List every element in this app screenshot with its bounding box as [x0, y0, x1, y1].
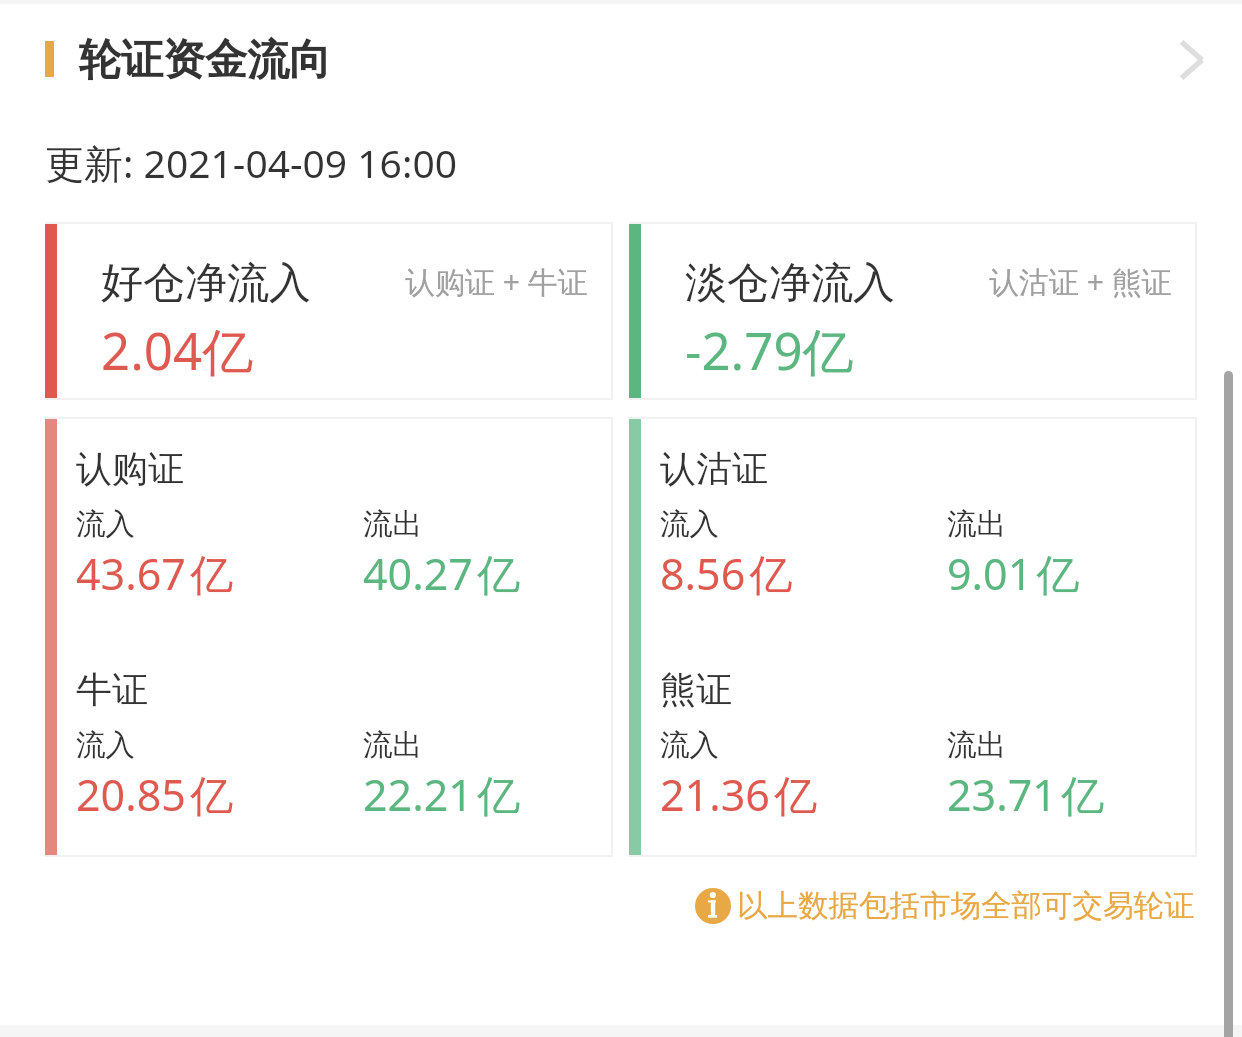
staticText: 23.71 亿	[947, 765, 1105, 824]
staticText: 43.67 亿	[76, 544, 234, 603]
button[interactable]: 轮证资金流向	[0, 0, 1170, 120]
button[interactable]: 认购证	[45, 417, 613, 857]
other: Information	[695, 888, 731, 924]
staticText: 8.56 亿	[660, 544, 793, 603]
staticText: 认沽证	[660, 446, 768, 491]
button[interactable]: Information	[695, 878, 1195, 934]
button[interactable]: Open 轮证资金流向 details	[1156, 24, 1228, 96]
staticText: -2.79亿	[685, 315, 854, 385]
staticText: 牛证	[76, 667, 148, 712]
staticText: 流出	[947, 506, 1006, 543]
button[interactable]: 认沽证	[629, 417, 1197, 857]
staticText: 好仓净流入	[101, 257, 311, 310]
button[interactable]: 好仓净流入	[45, 222, 613, 400]
staticText: 20.85 亿	[76, 765, 234, 824]
staticText: 流出	[363, 727, 422, 764]
staticText: 流入	[76, 727, 135, 764]
staticText: 认购证 + 牛证	[405, 261, 588, 302]
staticText: 22.21 亿	[363, 765, 521, 824]
staticText: 以上数据包括市场全部可交易轮证	[737, 887, 1195, 925]
staticText: 流出	[947, 727, 1006, 764]
staticText: 轮证资金流向	[79, 34, 331, 87]
staticText: 熊证	[660, 667, 732, 712]
staticText: 流入	[660, 506, 719, 543]
staticText: 流入	[660, 727, 719, 764]
staticText: 认沽证 + 熊证	[989, 261, 1172, 302]
staticText: 淡仓净流入	[685, 257, 895, 310]
staticText: 21.36 亿	[660, 765, 818, 824]
staticText: 40.27 亿	[363, 544, 521, 603]
staticText: 流出	[363, 506, 422, 543]
staticText: 流入	[76, 506, 135, 543]
staticText: 2.04亿	[101, 315, 254, 385]
button[interactable]: 淡仓净流入	[629, 222, 1197, 400]
staticText: 更新: 2021-04-09 16:00	[45, 136, 457, 189]
staticText: 认购证	[76, 446, 184, 491]
staticText: 9.01 亿	[947, 544, 1080, 603]
